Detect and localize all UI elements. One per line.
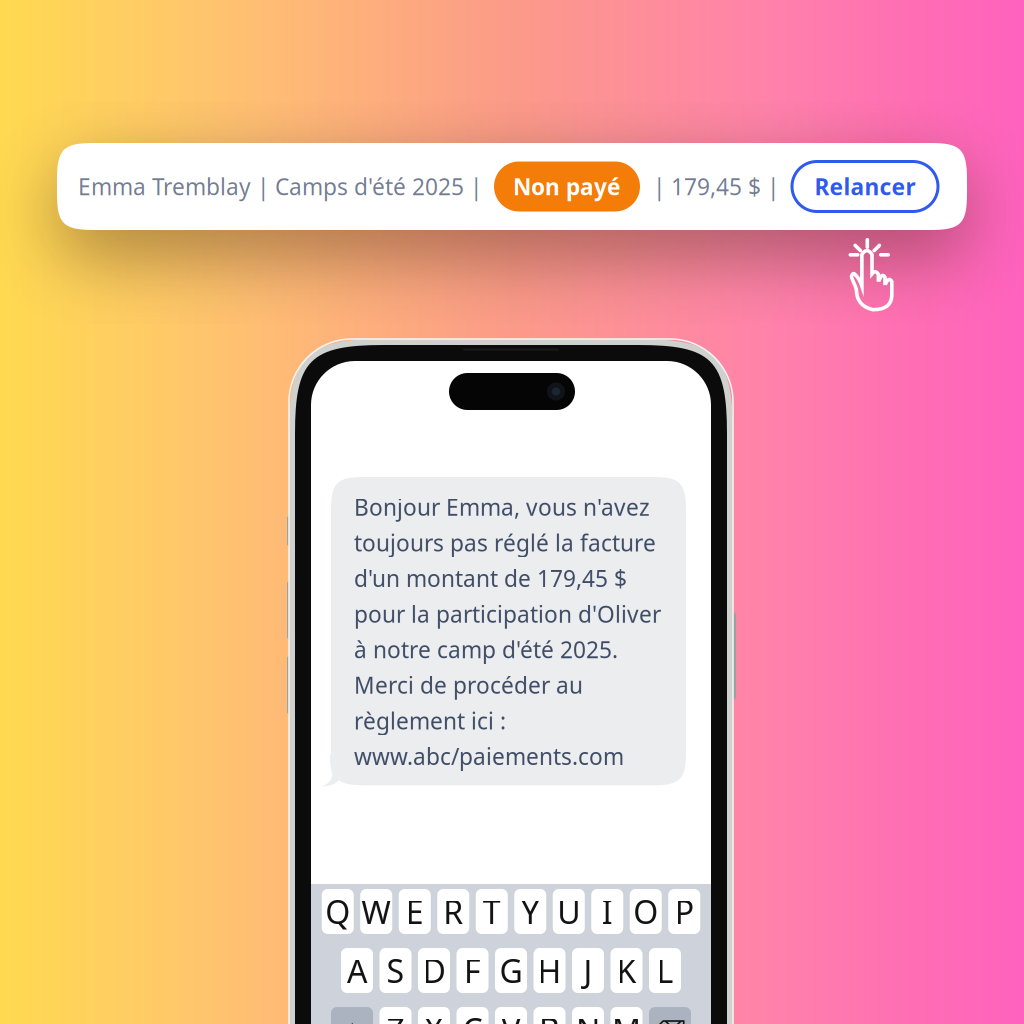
- button[interactable]: U: [553, 889, 585, 934]
- staticText: Q: [325, 890, 350, 933]
- staticText: D: [422, 949, 445, 992]
- staticText: L: [656, 949, 673, 992]
- button[interactable]: A: [341, 948, 373, 993]
- button[interactable]: H: [533, 948, 565, 993]
- button[interactable]: Y: [514, 889, 546, 934]
- button[interactable]: X: [418, 1007, 450, 1024]
- button[interactable]: Non payé: [494, 161, 640, 211]
- button[interactable]: R: [437, 889, 469, 934]
- staticText: N: [576, 1008, 600, 1024]
- button[interactable]: B: [533, 1007, 565, 1024]
- staticText: Emma Tremblay | Camps d'été 2025 |: [78, 171, 482, 201]
- button[interactable]: T: [476, 889, 508, 934]
- staticText: Relancer: [814, 171, 915, 201]
- staticText: S: [386, 949, 404, 992]
- button[interactable]: C: [456, 1007, 488, 1024]
- staticText: T: [483, 890, 501, 933]
- button[interactable]: W: [360, 889, 392, 934]
- button[interactable]: ⌫: [649, 1007, 691, 1024]
- button[interactable]: S: [379, 948, 411, 993]
- staticText: H: [537, 949, 561, 992]
- staticText: E: [406, 890, 424, 933]
- button[interactable]: Q: [322, 889, 354, 934]
- button[interactable]: M: [610, 1007, 642, 1024]
- button[interactable]: F: [456, 948, 488, 993]
- button[interactable]: E: [399, 889, 431, 934]
- staticText: R: [443, 890, 463, 933]
- button[interactable]: N: [572, 1007, 604, 1024]
- staticText: O: [633, 890, 658, 933]
- button[interactable]: Z: [379, 1007, 411, 1024]
- staticText: F: [464, 949, 481, 992]
- staticText: M: [612, 1008, 641, 1024]
- staticText: U: [557, 890, 580, 933]
- button[interactable]: D: [418, 948, 450, 993]
- button[interactable]: K: [610, 948, 642, 993]
- staticText: V: [501, 1008, 520, 1024]
- staticText: A: [347, 949, 367, 992]
- staticText: Non payé: [513, 171, 621, 201]
- button[interactable]: I: [591, 889, 623, 934]
- staticText: C: [462, 1008, 482, 1024]
- staticText: I: [602, 890, 613, 933]
- staticText: B: [539, 1008, 560, 1024]
- staticText: P: [675, 890, 694, 933]
- button[interactable]: O: [630, 889, 662, 934]
- button[interactable]: G: [495, 948, 527, 993]
- button[interactable]: V: [495, 1007, 527, 1024]
- button[interactable]: ▲: [331, 1007, 373, 1024]
- staticText: G: [499, 949, 522, 992]
- staticText: Y: [521, 890, 539, 933]
- staticText: Bonjour Emma, vous n'avez toujours pas r…: [354, 492, 661, 771]
- staticText: ⌫: [654, 1017, 686, 1024]
- button[interactable]: J: [572, 948, 604, 993]
- staticText: J: [583, 949, 592, 992]
- button[interactable]: Relancer: [792, 161, 938, 211]
- button[interactable]: L: [649, 948, 681, 993]
- staticText: K: [616, 949, 636, 992]
- staticText: Z: [386, 1008, 404, 1024]
- staticText: X: [424, 1008, 443, 1024]
- staticText: W: [361, 890, 391, 933]
- staticText: ▲: [343, 1017, 360, 1024]
- staticText: | 179,45 $ |: [653, 171, 779, 201]
- button[interactable]: P: [668, 889, 700, 934]
